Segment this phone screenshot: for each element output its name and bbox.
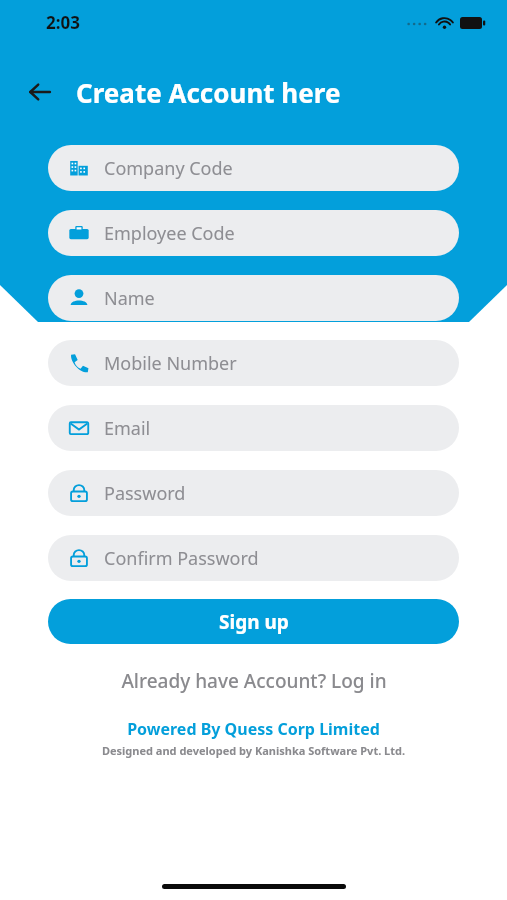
staticText: 2:03 [46, 11, 80, 34]
staticText: Email [104, 416, 151, 441]
staticText: Mobile Number [104, 351, 237, 376]
button[interactable]: Password [48, 470, 459, 516]
staticText: Designed and developed by Kanishka Softw… [0, 743, 507, 758]
button[interactable]: Email [48, 405, 459, 451]
button[interactable]: Already have Account? Log in [0, 668, 507, 694]
staticText: Password [104, 481, 186, 506]
button[interactable]: Name [48, 275, 459, 321]
staticText: Name [104, 286, 155, 311]
button[interactable]: Back [20, 72, 60, 112]
staticText: Confirm Password [104, 546, 259, 571]
button[interactable]: Sign up [48, 599, 459, 644]
button[interactable]: Confirm Password [48, 535, 459, 581]
staticText: Powered By Quess Corp Limited [0, 718, 507, 740]
button[interactable]: Employee Code [48, 210, 459, 256]
staticText: Company Code [104, 156, 233, 181]
staticText: Create Account here [76, 75, 341, 110]
staticText: Already have Account? Log in [121, 668, 387, 694]
button[interactable]: Mobile Number [48, 340, 459, 386]
staticText: Employee Code [104, 221, 235, 246]
staticText: Sign up [219, 609, 289, 635]
button[interactable]: Company Code [48, 145, 459, 191]
